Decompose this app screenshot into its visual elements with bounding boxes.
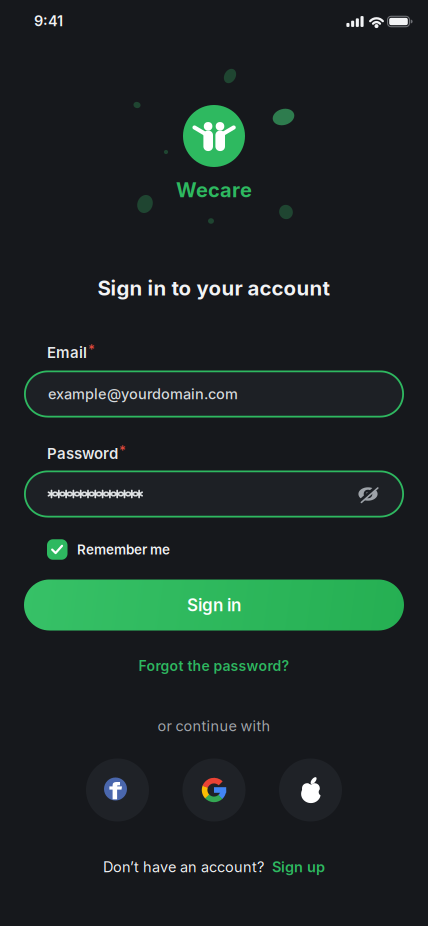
- button[interactable]: Forgot the password?: [138, 657, 289, 674]
- staticText: Sign up: [272, 858, 325, 876]
- staticText: *: [88, 342, 95, 357]
- staticText: example@yourdomain.com: [48, 385, 238, 403]
- button[interactable]: Password: [24, 470, 404, 517]
- staticText: Email: [47, 343, 87, 361]
- staticText: or continue with: [157, 717, 270, 735]
- button[interactable]: Remember me: [24, 539, 404, 560]
- staticText: *: [119, 443, 126, 458]
- staticText: Sign in to your account: [97, 276, 330, 300]
- staticText: Forgot the password?: [138, 657, 289, 674]
- button[interactable]: Sign up: [272, 858, 325, 876]
- button[interactable]: Show password: [353, 479, 383, 509]
- staticText: Don’t have an account?: [103, 858, 264, 876]
- button[interactable]: [279, 758, 342, 821]
- button[interactable]: Email: [24, 370, 404, 417]
- staticText: 9:41: [34, 12, 63, 30]
- staticText: Password: [47, 444, 118, 462]
- staticText: Wecare: [176, 178, 252, 202]
- button[interactable]: Sign in: [24, 579, 404, 630]
- button[interactable]: [182, 758, 245, 821]
- button[interactable]: [86, 758, 149, 821]
- staticText: Remember me: [77, 541, 170, 558]
- staticText: Sign in: [187, 595, 241, 615]
